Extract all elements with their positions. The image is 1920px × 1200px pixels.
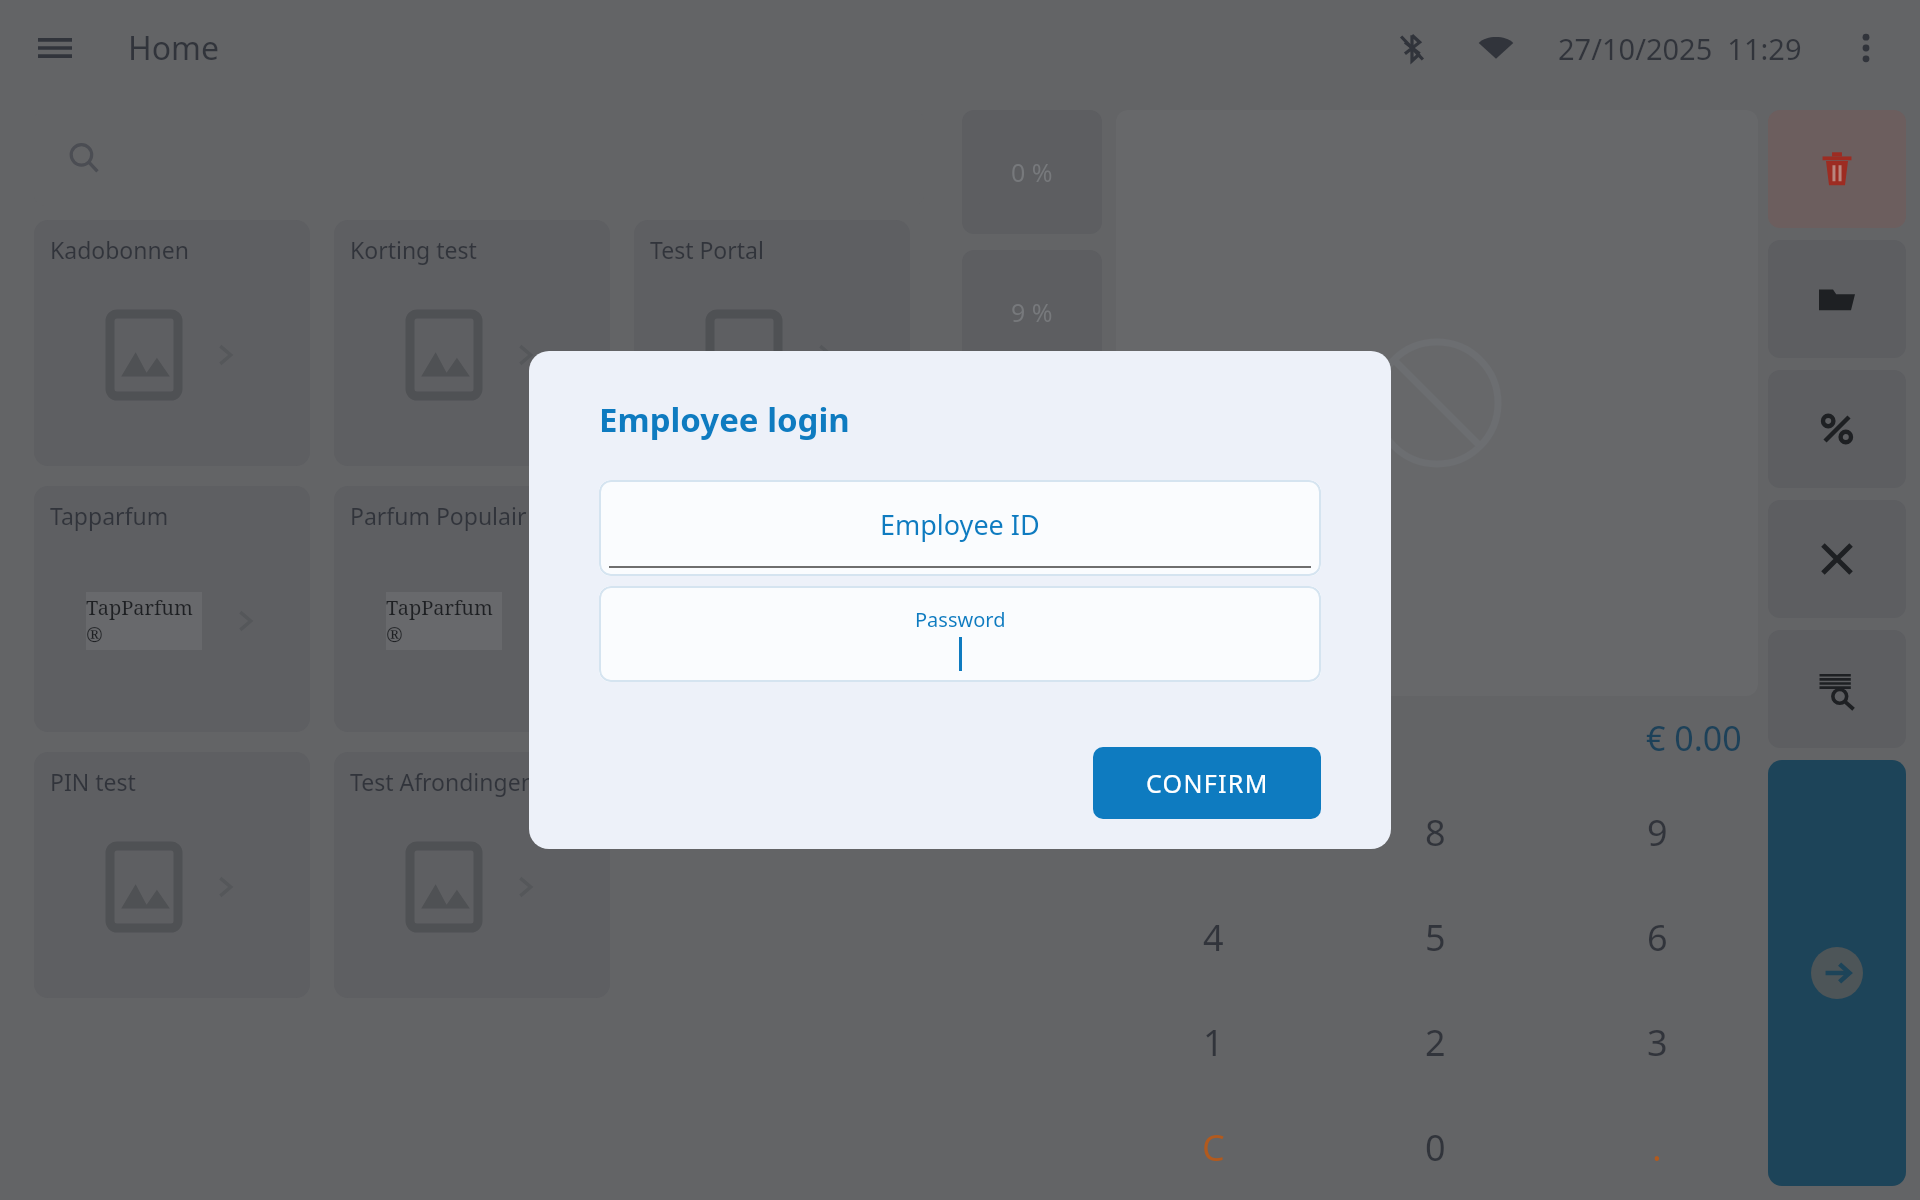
staticText: 0	[1425, 1123, 1446, 1172]
button[interactable]: 21 %	[962, 390, 1102, 514]
staticText: 9	[1647, 808, 1668, 857]
button[interactable]: Password	[599, 586, 1321, 682]
staticText: 1	[1203, 1018, 1224, 1067]
button[interactable]: Kadobonnen	[34, 220, 310, 466]
staticText: € 0.00	[1646, 715, 1742, 761]
staticText: TapParfum®	[86, 594, 202, 648]
staticText: Kadobonnen	[50, 234, 189, 265]
button[interactable]: Test Portal	[634, 220, 910, 466]
button[interactable]: 8	[1324, 780, 1546, 885]
button[interactable]: 5	[1324, 885, 1546, 990]
button[interactable]: Korting test	[334, 220, 610, 466]
button[interactable]: Discount	[1768, 370, 1906, 488]
staticText: 3	[1647, 1018, 1668, 1067]
button[interactable]: 2	[1324, 990, 1546, 1095]
staticText: 5	[1425, 913, 1446, 962]
staticText: 9 %	[1011, 295, 1053, 329]
button[interactable]: Cancel	[1768, 500, 1906, 618]
button[interactable]: 6	[1546, 885, 1768, 990]
button[interactable]: C	[1102, 1095, 1324, 1200]
staticText: 2	[1425, 1018, 1446, 1067]
button[interactable]: PIN test	[34, 752, 310, 998]
button[interactable]: 4	[1102, 885, 1324, 990]
button[interactable]: Menu	[26, 19, 84, 77]
staticText: 7	[1203, 808, 1224, 857]
button[interactable]: More options	[1838, 20, 1894, 76]
staticText: Test Portal	[650, 234, 764, 265]
button[interactable]: 9	[1546, 780, 1768, 885]
button[interactable]: Delete	[1768, 110, 1906, 228]
button[interactable]: Pay	[1768, 760, 1906, 1186]
staticText: Parfum Populair	[350, 500, 527, 531]
button[interactable]: Scan barcode	[1768, 630, 1906, 748]
staticText: PIN test	[50, 766, 136, 797]
staticText: 0 %	[1011, 155, 1053, 189]
staticText: Tapparfum	[50, 500, 169, 531]
button[interactable]: Bluetooth off	[1384, 20, 1440, 76]
staticText: .	[1652, 1123, 1662, 1172]
staticText: 6	[1647, 913, 1668, 962]
button[interactable]: 9 %	[962, 250, 1102, 374]
button[interactable]: Test Afrondingen T	[334, 752, 610, 998]
staticText: Employee login	[599, 397, 850, 442]
button[interactable]: 3	[1546, 990, 1768, 1095]
staticText: Home	[128, 26, 220, 70]
staticText: TapParfum®	[386, 594, 502, 648]
staticText: Password	[915, 606, 1006, 633]
button[interactable]: 0	[1324, 1095, 1546, 1200]
button[interactable]: Employee ID	[599, 480, 1321, 576]
button[interactable]: Tapparfum	[34, 486, 310, 732]
staticText: Korting test	[350, 234, 477, 265]
button[interactable]: Open orders	[1768, 240, 1906, 358]
staticText: C	[1202, 1123, 1225, 1172]
button[interactable]: Wi-Fi	[1468, 20, 1524, 76]
staticText: Employee ID	[880, 506, 1040, 543]
staticText: 4	[1203, 913, 1224, 962]
button[interactable]: 7	[1102, 780, 1324, 885]
staticText: 27/10/2025 11:29	[1558, 29, 1802, 68]
button[interactable]: Parfum Populair	[334, 486, 610, 732]
staticText: Test Afrondingen T	[350, 766, 554, 797]
staticText: 8	[1425, 808, 1446, 857]
button[interactable]: CONFIRM	[1093, 747, 1321, 819]
staticText: CONFIRM	[1146, 766, 1269, 800]
